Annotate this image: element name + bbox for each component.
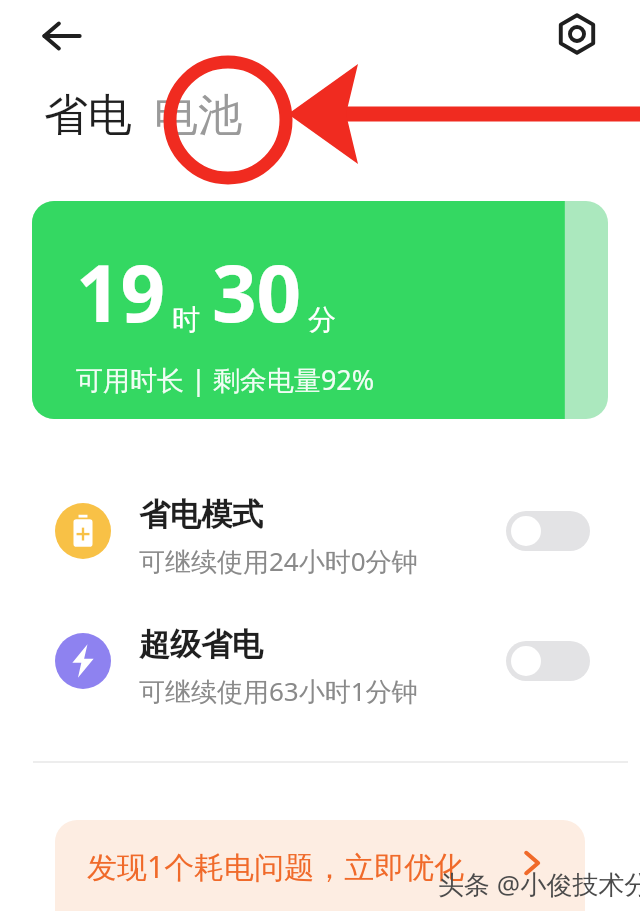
- staticText: 30: [212, 239, 302, 345]
- staticText: 超级省电: [139, 625, 263, 664]
- staticText: 省电模式: [139, 495, 263, 534]
- button[interactable]: Settings: [551, 8, 603, 60]
- staticText: 可继续使用24小时0分钟: [139, 543, 418, 579]
- button[interactable]: 省电模式: [506, 511, 590, 551]
- button[interactable]: 19: [32, 201, 608, 419]
- staticText: 省电: [44, 88, 132, 143]
- staticText: 可用时长 | 剩余电量92%: [76, 361, 375, 398]
- button[interactable]: Back: [36, 10, 88, 62]
- button[interactable]: 省电: [44, 88, 132, 143]
- button[interactable]: 省电模式: [0, 478, 640, 588]
- staticText: 电池: [154, 88, 242, 143]
- button[interactable]: 发现1个耗电问题，立即优化: [55, 820, 585, 911]
- staticText: 头条 @小俊技术分享: [438, 866, 640, 902]
- staticText: 19: [76, 239, 166, 345]
- staticText: 分: [308, 302, 336, 337]
- staticText: 可继续使用63小时1分钟: [139, 673, 418, 709]
- button[interactable]: 电池: [154, 88, 242, 143]
- button[interactable]: 超级省电: [506, 641, 590, 681]
- button[interactable]: 超级省电: [0, 608, 640, 718]
- staticText: 发现1个耗电问题，立即优化: [87, 846, 465, 887]
- staticText: 时: [172, 302, 200, 337]
